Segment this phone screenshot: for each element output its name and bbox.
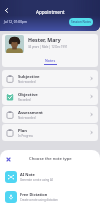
staticText: Session Notes xyxy=(71,20,92,24)
button[interactable]: Close xyxy=(3,154,13,164)
button[interactable]: Notes xyxy=(44,58,57,65)
staticText: Free Dictation xyxy=(20,192,48,197)
staticText: Objective xyxy=(18,92,38,98)
staticText: AI Note xyxy=(20,172,35,177)
staticText: Hester, Mary xyxy=(28,36,61,43)
button[interactable]: Assessment xyxy=(2,106,98,123)
staticText: In Progress xyxy=(18,134,33,138)
button[interactable]: AI Note xyxy=(5,170,100,184)
staticText: Subjective xyxy=(18,74,40,80)
staticText: Choose the note type xyxy=(29,156,72,162)
staticText: Jul 12, 01:00pm xyxy=(4,20,27,24)
button[interactable]: Session Notes xyxy=(69,18,93,26)
staticText: Not recorded xyxy=(18,80,36,84)
staticText: Notes xyxy=(45,58,56,63)
button[interactable]: Objective xyxy=(2,88,98,105)
staticText: Recorded xyxy=(18,98,31,102)
staticText: Create a note using dictation xyxy=(20,198,58,202)
staticText: Assessment xyxy=(18,110,43,116)
staticText: Appointment xyxy=(36,9,65,15)
staticText: Generate a note using AI xyxy=(20,178,53,182)
staticText: 34 years | Male | 12 Dec 1991 xyxy=(28,45,68,49)
button[interactable]: Subjective xyxy=(2,70,98,87)
staticText: Not recorded xyxy=(18,116,36,120)
button[interactable]: Plan xyxy=(2,124,98,141)
button[interactable]: Back xyxy=(1,5,12,16)
button[interactable]: Free Dictation xyxy=(5,190,100,204)
staticText: Plan xyxy=(18,128,28,134)
